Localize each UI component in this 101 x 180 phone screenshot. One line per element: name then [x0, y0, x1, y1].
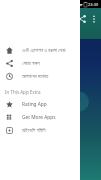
button[interactable]: Home: [0, 44, 80, 57]
staticText: প্রাইভেসি পলিসি: [22, 127, 46, 134]
staticText: Rating App: [22, 101, 47, 108]
staticText: Get More Apps: [22, 114, 56, 121]
button[interactable]: More options: [88, 13, 99, 24]
button[interactable]: Feedback: [0, 70, 80, 83]
button[interactable]: Share: [75, 12, 88, 25]
button[interactable]: Privacy policy: [0, 124, 80, 137]
button[interactable]: Share app: [0, 57, 80, 70]
staticText: 23:30: [88, 2, 99, 7]
staticText: এ-টি এ্যাপসের এ রক্কানা দোয়া: [22, 47, 66, 54]
staticText: শেয়ার করুন: [22, 60, 40, 67]
staticText: In This App Extra: [5, 89, 41, 95]
staticText: আপনাদের মতামত: [22, 73, 49, 80]
button[interactable]: Rating App: [0, 98, 80, 111]
button[interactable]: Get More Apps: [0, 111, 80, 124]
